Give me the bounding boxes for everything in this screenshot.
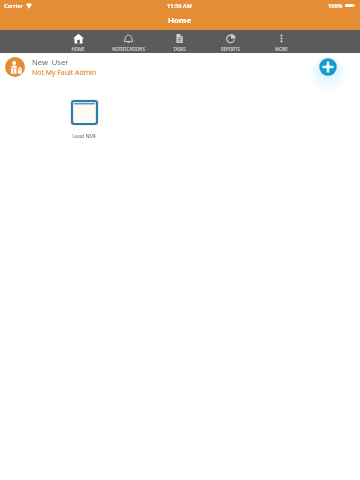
staticText: Lead NMF [72, 132, 97, 139]
staticText: 100% [328, 2, 343, 10]
button[interactable]: NOTIFICATIONS [103, 30, 154, 53]
button[interactable]: Add [319, 58, 337, 76]
button[interactable]: HOME [53, 30, 103, 53]
button[interactable]: Lead NMF [57, 100, 112, 139]
staticText: Carrier [4, 2, 23, 10]
staticText: REPORTS [221, 46, 240, 52]
staticText: 11:56 AM [167, 2, 192, 10]
button[interactable]: TASKS [154, 30, 205, 53]
button[interactable] [5, 57, 25, 77]
staticText: TASKS [173, 46, 186, 52]
button[interactable]: MORE [256, 30, 307, 53]
staticText: NOTIFICATIONS [112, 46, 145, 52]
button[interactable]: New User [32, 53, 97, 80]
staticText: Not My Fault Admin [32, 68, 97, 77]
button[interactable]: REPORTS [205, 30, 256, 53]
staticText: New User [32, 57, 69, 67]
staticText: HOME [71, 46, 85, 52]
staticText: MORE [275, 46, 288, 52]
staticText: Home [168, 15, 192, 26]
